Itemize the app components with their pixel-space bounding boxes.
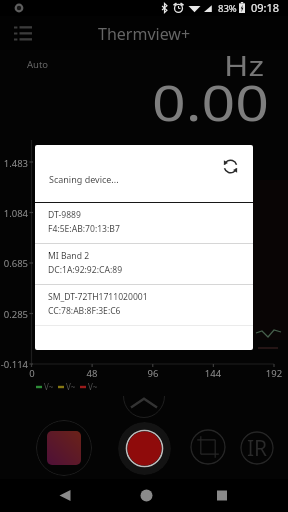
staticText: 48 — [78, 367, 106, 380]
staticText: 96 — [139, 367, 167, 380]
staticText: -0.114 — [0, 358, 28, 371]
staticText: F4:5E:AB:70:13:B7 — [48, 223, 120, 235]
button[interactable]: Refresh — [218, 154, 242, 178]
staticText: Hz — [224, 46, 264, 84]
staticText: 0 — [18, 367, 46, 380]
staticText: 0.685 — [0, 257, 28, 270]
button[interactable]: Gallery — [36, 420, 92, 476]
button[interactable]: Back — [49, 479, 81, 512]
button[interactable]: Crop — [190, 429, 226, 465]
button[interactable]: Record — [118, 422, 171, 475]
staticText: 0.285 — [0, 308, 28, 321]
staticText: 0.00 — [152, 68, 270, 136]
staticText: 192 — [260, 367, 288, 380]
button[interactable]: Infrared mode — [240, 431, 274, 465]
staticText: IR — [247, 434, 268, 463]
staticText: 83% — [218, 2, 237, 15]
staticText: DC:1A:92:92:CA:89 — [48, 264, 123, 276]
staticText: 1.483 — [0, 157, 28, 170]
staticText: Thermview+ — [98, 23, 191, 45]
staticText: DT-9889 — [48, 209, 81, 221]
staticText: Scaning device... — [49, 173, 119, 185]
button[interactable]: Expand panel — [123, 396, 165, 418]
staticText: CC:78:AB:8F:3E:C6 — [48, 305, 121, 317]
staticText: 1.084 — [0, 207, 28, 220]
staticText: V~ — [44, 381, 54, 392]
staticText: 144 — [199, 367, 227, 380]
button[interactable]: Home — [130, 479, 162, 512]
staticText: V~ — [88, 381, 98, 392]
button[interactable]: DT-9889 — [35, 203, 253, 243]
staticText: V~ — [66, 381, 76, 392]
staticText: MI Band 2 — [48, 250, 90, 262]
staticText: Auto — [27, 58, 49, 71]
button[interactable]: Menu — [8, 18, 38, 48]
button[interactable]: MI Band 2 — [35, 244, 253, 284]
button[interactable]: SM_DT-72TH1711020001 — [35, 285, 253, 325]
staticText: 09:18 — [251, 1, 280, 15]
staticText: SM_DT-72TH1711020001 — [48, 291, 148, 303]
button[interactable]: Recent apps — [206, 479, 238, 512]
